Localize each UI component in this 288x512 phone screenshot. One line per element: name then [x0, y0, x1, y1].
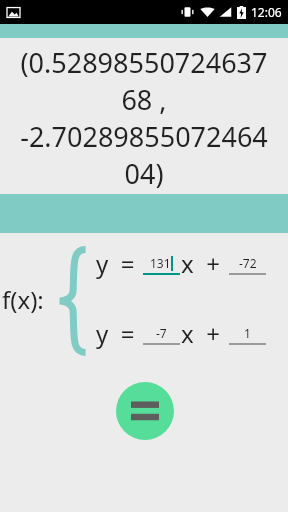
button[interactable]: 131 [143, 253, 180, 275]
staticText: -72 [239, 255, 257, 271]
staticText: 12:06 [251, 4, 282, 20]
staticText: y = [96, 247, 135, 280]
staticText: 1 [244, 325, 251, 341]
button[interactable]: Solve [116, 382, 174, 440]
staticText: (0.52898550724637 68 , -2.70289855072464… [0, 44, 288, 192]
staticText: -7 [156, 325, 167, 341]
staticText: f(x): [2, 283, 44, 316]
staticText: x + [181, 317, 220, 350]
button[interactable]: -7 [143, 323, 180, 345]
button[interactable]: -72 [229, 253, 266, 275]
staticText: y = [96, 317, 135, 350]
staticText: x + [181, 247, 220, 280]
button[interactable]: 1 [229, 323, 266, 345]
staticText: 131 [150, 255, 171, 271]
